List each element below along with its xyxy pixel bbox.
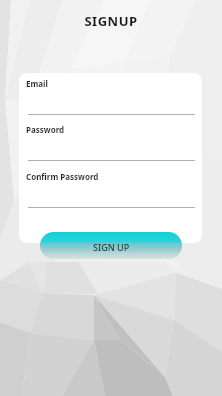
staticText: SIGN UP [93, 241, 130, 253]
staticText: Password [26, 124, 65, 135]
button[interactable]: Sign up [40, 232, 182, 259]
staticText: SIGNUP [0, 12, 222, 30]
staticText: Confirm Password [26, 171, 99, 182]
staticText: Email [26, 78, 48, 89]
